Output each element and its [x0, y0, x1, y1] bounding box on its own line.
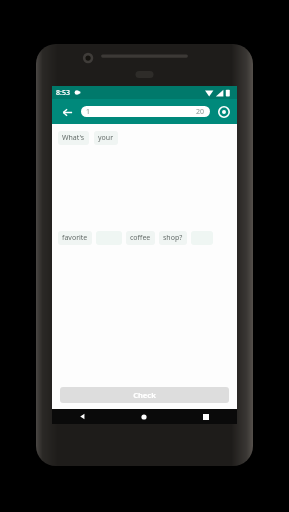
staticText: coffee — [130, 233, 151, 243]
staticText: 1 — [86, 107, 91, 117]
button[interactable]: Home — [113, 409, 175, 424]
button[interactable]: Back — [57, 102, 77, 122]
button[interactable]: What's — [58, 131, 89, 145]
button[interactable]: Back — [52, 409, 113, 424]
staticText: favorite — [62, 233, 88, 243]
button[interactable]: Play audio — [216, 104, 232, 120]
button[interactable]: Check — [60, 387, 229, 403]
staticText: shop? — [163, 233, 183, 243]
button[interactable]: Recent apps — [175, 409, 237, 424]
button[interactable]: coffee — [126, 231, 155, 245]
button[interactable]: favorite — [58, 231, 92, 245]
button[interactable]: shop? — [159, 231, 187, 245]
button[interactable]: 1 — [81, 106, 210, 117]
staticText: Check — [133, 390, 156, 400]
staticText: 20 — [196, 107, 205, 117]
button[interactable]: your — [94, 131, 118, 145]
staticText: your — [98, 133, 114, 143]
staticText: 8:53 — [56, 88, 70, 98]
staticText: What's — [62, 133, 85, 143]
